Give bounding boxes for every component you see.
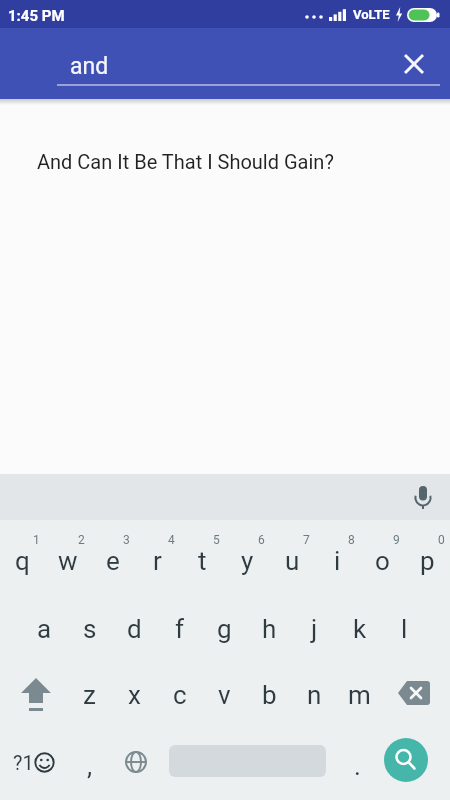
staticText: j — [311, 614, 318, 644]
staticText: z — [83, 680, 96, 710]
button[interactable]: y — [225, 520, 270, 590]
button[interactable] — [382, 660, 450, 730]
staticText: c — [173, 680, 187, 710]
staticText: m — [348, 680, 371, 710]
button[interactable]: i — [315, 520, 360, 590]
staticText: 5 — [213, 533, 220, 547]
button[interactable] — [0, 660, 67, 730]
button[interactable]: and — [0, 28, 450, 99]
staticText: d — [127, 614, 142, 644]
staticText: w — [58, 546, 78, 576]
staticText: t — [198, 546, 207, 576]
staticText: h — [262, 614, 277, 644]
staticText: i — [334, 546, 341, 576]
button[interactable]: ?1 — [0, 730, 67, 800]
staticText: 2 — [78, 533, 85, 547]
button[interactable]: o — [360, 520, 405, 590]
button[interactable]: j — [292, 590, 337, 660]
button[interactable] — [112, 730, 160, 800]
staticText: s — [83, 614, 97, 644]
staticText: 9 — [393, 533, 400, 547]
staticText: and — [70, 53, 109, 80]
button[interactable]: c — [157, 660, 202, 730]
staticText: k — [353, 614, 367, 644]
staticText: r — [153, 546, 162, 576]
staticText: 8 — [348, 533, 355, 547]
button[interactable]: t — [180, 520, 225, 590]
staticText: x — [128, 680, 141, 710]
staticText: 0 — [438, 533, 445, 547]
staticText: 7 — [303, 533, 310, 547]
staticText: , — [87, 751, 93, 781]
staticText: And Can It Be That I Should Gain? — [37, 150, 334, 173]
staticText: p — [420, 546, 435, 576]
button[interactable]: d — [112, 590, 157, 660]
button[interactable]: m — [337, 660, 382, 730]
staticText: y — [241, 546, 254, 576]
staticText: v — [218, 680, 231, 710]
button[interactable]: n — [292, 660, 337, 730]
button[interactable]: a — [22, 590, 67, 660]
button[interactable]: p — [405, 520, 450, 590]
button[interactable]: And Can It Be That I Should Gain? — [0, 135, 450, 187]
staticText: . — [354, 751, 361, 781]
button[interactable]: z — [67, 660, 112, 730]
staticText: 1:45 PM — [8, 7, 65, 25]
staticText: l — [401, 614, 408, 644]
staticText: f — [175, 614, 185, 644]
staticText: a — [37, 614, 52, 644]
staticText: q — [15, 546, 30, 576]
button[interactable] — [409, 483, 437, 511]
button[interactable]: u — [270, 520, 315, 590]
staticText: 4 — [168, 533, 175, 547]
button[interactable]: l — [382, 590, 427, 660]
button[interactable]: h — [247, 590, 292, 660]
button[interactable]: g — [202, 590, 247, 660]
button[interactable]: q — [0, 520, 45, 590]
staticText: 6 — [258, 533, 265, 547]
button[interactable]: x — [112, 660, 157, 730]
staticText: u — [285, 546, 300, 576]
staticText: g — [217, 614, 232, 644]
staticText: e — [106, 546, 120, 576]
button[interactable]: s — [67, 590, 112, 660]
staticText: n — [307, 680, 322, 710]
button[interactable]: . — [335, 730, 380, 800]
staticText: b — [262, 680, 277, 710]
staticText: 3 — [123, 533, 130, 547]
staticText: 1 — [33, 533, 40, 547]
staticText: VoLTE — [353, 7, 390, 22]
button[interactable]: w — [45, 520, 90, 590]
button[interactable]: , — [67, 730, 112, 800]
staticText: o — [375, 546, 390, 576]
button[interactable] — [384, 738, 428, 782]
button[interactable]: b — [247, 660, 292, 730]
button[interactable]: r — [135, 520, 180, 590]
button[interactable]: v — [202, 660, 247, 730]
button[interactable]: f — [157, 590, 202, 660]
staticText: ?1 — [13, 751, 34, 774]
button[interactable] — [394, 44, 434, 84]
button[interactable]: e — [90, 520, 135, 590]
button[interactable]: k — [337, 590, 382, 660]
